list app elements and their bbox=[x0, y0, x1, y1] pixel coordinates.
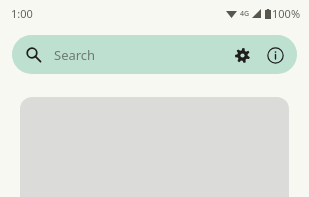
staticText: Search bbox=[54, 46, 96, 64]
button[interactable]: Search bbox=[12, 35, 297, 74]
staticText: 1:00 bbox=[11, 6, 33, 21]
staticText: 4G bbox=[240, 9, 250, 19]
button[interactable]: Settings bbox=[227, 40, 257, 70]
staticText: 100% bbox=[272, 6, 301, 21]
button[interactable]: Info bbox=[260, 40, 290, 70]
other: Search bbox=[25, 46, 42, 63]
